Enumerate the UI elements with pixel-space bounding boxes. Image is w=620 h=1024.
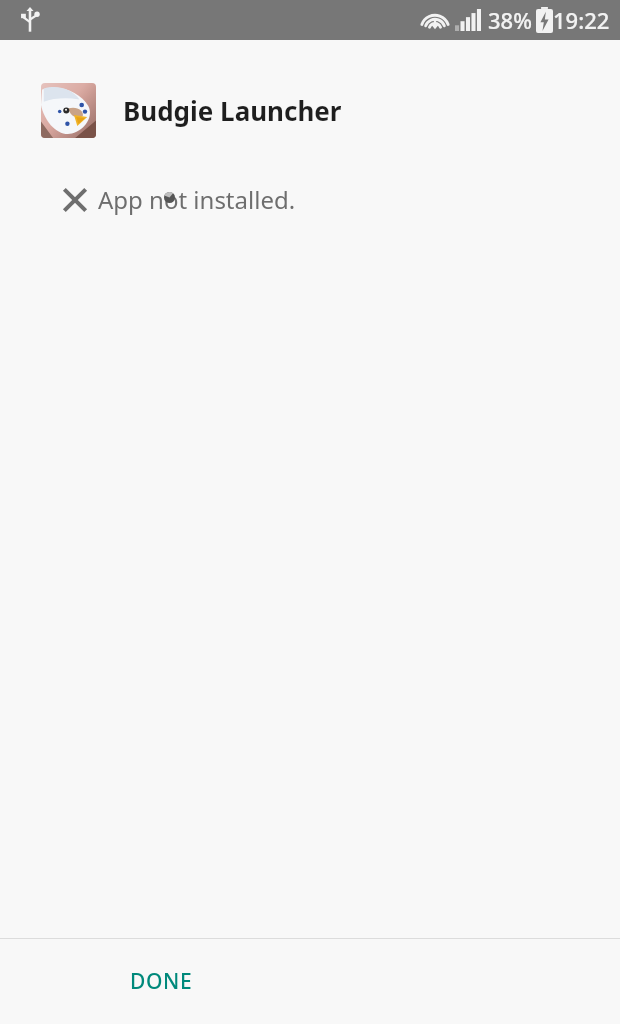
staticText: 19:22 bbox=[553, 5, 610, 35]
button[interactable]: DONE bbox=[108, 953, 215, 1010]
staticText: App not installed. bbox=[98, 183, 296, 216]
staticText: 38% bbox=[488, 5, 532, 35]
staticText: Budgie Launcher bbox=[123, 93, 342, 128]
staticText: DONE bbox=[130, 967, 193, 996]
other: Failed bbox=[62, 187, 88, 213]
